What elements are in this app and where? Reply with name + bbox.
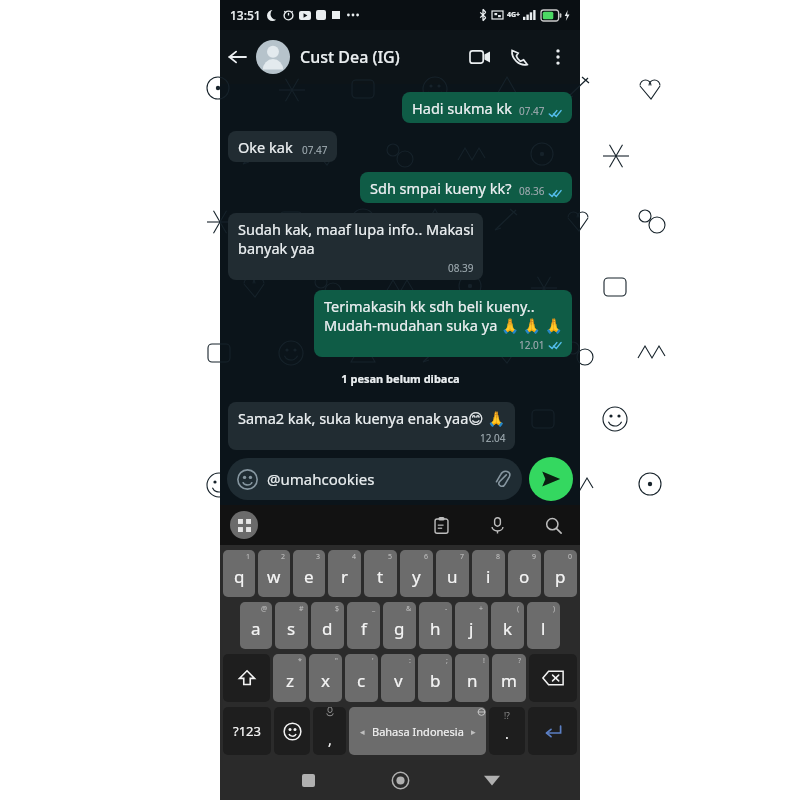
- button[interactable]: 7: [436, 550, 469, 597]
- button[interactable]: Recents: [288, 760, 328, 800]
- staticText: Bahasa Indonesia: [372, 724, 464, 739]
- button[interactable]: Video call: [460, 37, 500, 77]
- button[interactable]: 4: [328, 550, 361, 597]
- staticText: Sama2 kak, suka kuenya enak yaa😊 🙏: [238, 408, 506, 428]
- staticText: v: [394, 669, 403, 692]
- button[interactable]: :: [381, 654, 415, 702]
- button[interactable]: 8: [472, 550, 505, 597]
- staticText: :: [409, 656, 411, 666]
- button[interactable]: Clipboard: [424, 508, 458, 542]
- button[interactable]: Sudah kak, maaf lupa info.. Makasi banya…: [228, 213, 483, 280]
- staticText: Hadi sukma kk: [412, 98, 512, 118]
- button[interactable]: 0: [544, 550, 577, 597]
- staticText: g: [394, 617, 405, 640]
- staticText: 7: [460, 552, 465, 562]
- staticText: !: [483, 656, 485, 666]
- staticText: j: [469, 617, 474, 640]
- button[interactable]: 9: [508, 550, 541, 597]
- staticText: Sudah kak, maaf lupa info.. Makasi banya…: [238, 219, 474, 258]
- staticText: &: [406, 604, 412, 614]
- staticText: d: [322, 617, 333, 640]
- staticText: 07.47: [519, 104, 545, 118]
- button[interactable]: Emoji: [227, 458, 522, 500]
- button[interactable]: More options: [540, 39, 576, 75]
- button[interactable]: Backspace: [529, 654, 577, 702]
- button[interactable]: Back: [472, 760, 512, 800]
- button[interactable]: Back: [220, 40, 254, 74]
- button[interactable]: $: [311, 602, 344, 649]
- staticText: ?123: [233, 722, 261, 740]
- staticText: x: [321, 669, 330, 692]
- staticText: ": [335, 656, 338, 666]
- button[interactable]: ;: [418, 654, 452, 702]
- staticText: $: [335, 604, 340, 614]
- button[interactable]: @: [240, 602, 272, 649]
- button[interactable]: +: [455, 602, 488, 649]
- staticText: r: [341, 565, 349, 588]
- button[interactable]: Hadi sukma kk: [402, 92, 572, 123]
- button[interactable]: Terimakasih kk sdh beli kueny.. Mudah-mu…: [314, 290, 572, 357]
- staticText: 1: [246, 552, 251, 562]
- staticText: a: [251, 617, 261, 640]
- staticText: 08.36: [519, 184, 545, 198]
- staticText: ◂: [360, 727, 365, 737]
- button[interactable]: Sdh smpai kueny kk?: [360, 172, 572, 203]
- staticText: 8: [496, 552, 501, 562]
- staticText: #: [299, 604, 304, 614]
- button[interactable]: 1: [223, 550, 255, 597]
- staticText: f: [361, 617, 367, 640]
- staticText: w: [267, 565, 281, 588]
- button[interactable]: &: [383, 602, 416, 649]
- staticText: l: [541, 617, 546, 640]
- button[interactable]: *: [273, 654, 306, 702]
- button[interactable]: 3: [293, 550, 325, 597]
- button[interactable]: ◂: [349, 707, 486, 755]
- staticText: 9: [532, 552, 537, 562]
- button[interactable]: Voice call: [500, 37, 540, 77]
- button[interactable]: Shift: [223, 654, 270, 702]
- other: Emoji: [237, 469, 258, 490]
- button[interactable]: Emoji: [274, 707, 310, 755]
- button[interactable]: Enter: [528, 707, 577, 755]
- staticText: p: [555, 565, 566, 588]
- button[interactable]: ,: [313, 707, 346, 755]
- button[interactable]: !?: [489, 707, 525, 755]
- button[interactable]: 5: [364, 550, 397, 597]
- staticText: z: [286, 669, 294, 692]
- button[interactable]: Apps: [230, 511, 258, 539]
- button[interactable]: ': [345, 654, 378, 702]
- staticText: 1 pesan belum dibaca: [341, 371, 460, 386]
- staticText: ': [372, 656, 374, 666]
- staticText: h: [430, 617, 441, 640]
- staticText: 0: [568, 552, 573, 562]
- staticText: _: [372, 604, 376, 614]
- staticText: n: [467, 669, 478, 692]
- button[interactable]: Voice input: [480, 508, 514, 542]
- staticText: t: [377, 565, 384, 588]
- button[interactable]: -: [419, 602, 452, 649]
- staticText: 6: [424, 552, 429, 562]
- button[interactable]: _: [347, 602, 380, 649]
- staticText: 13:51: [230, 7, 261, 23]
- button[interactable]: !: [455, 654, 489, 702]
- staticText: k: [503, 617, 513, 640]
- staticText: q: [234, 565, 245, 588]
- button[interactable]: Oke kak: [228, 131, 337, 162]
- button[interactable]: Search: [536, 508, 570, 542]
- button[interactable]: 6: [400, 550, 433, 597]
- button[interactable]: ": [309, 654, 342, 702]
- button[interactable]: Home: [380, 760, 420, 800]
- button[interactable]: Send: [529, 457, 573, 501]
- button[interactable]: #: [275, 602, 308, 649]
- staticText: 08.39: [448, 261, 474, 275]
- button[interactable]: 2: [258, 550, 290, 597]
- button[interactable]: Profile photo: [256, 40, 290, 74]
- button[interactable]: ?: [492, 654, 526, 702]
- button[interactable]: Cust Dea (IG): [300, 30, 460, 84]
- staticText: ,: [328, 730, 332, 749]
- button[interactable]: (: [491, 602, 524, 649]
- button[interactable]: Sama2 kak, suka kuenya enak yaa😊 🙏: [228, 402, 515, 450]
- staticText: 2: [281, 552, 286, 562]
- button[interactable]: ): [527, 602, 560, 649]
- button[interactable]: ?123: [223, 707, 271, 755]
